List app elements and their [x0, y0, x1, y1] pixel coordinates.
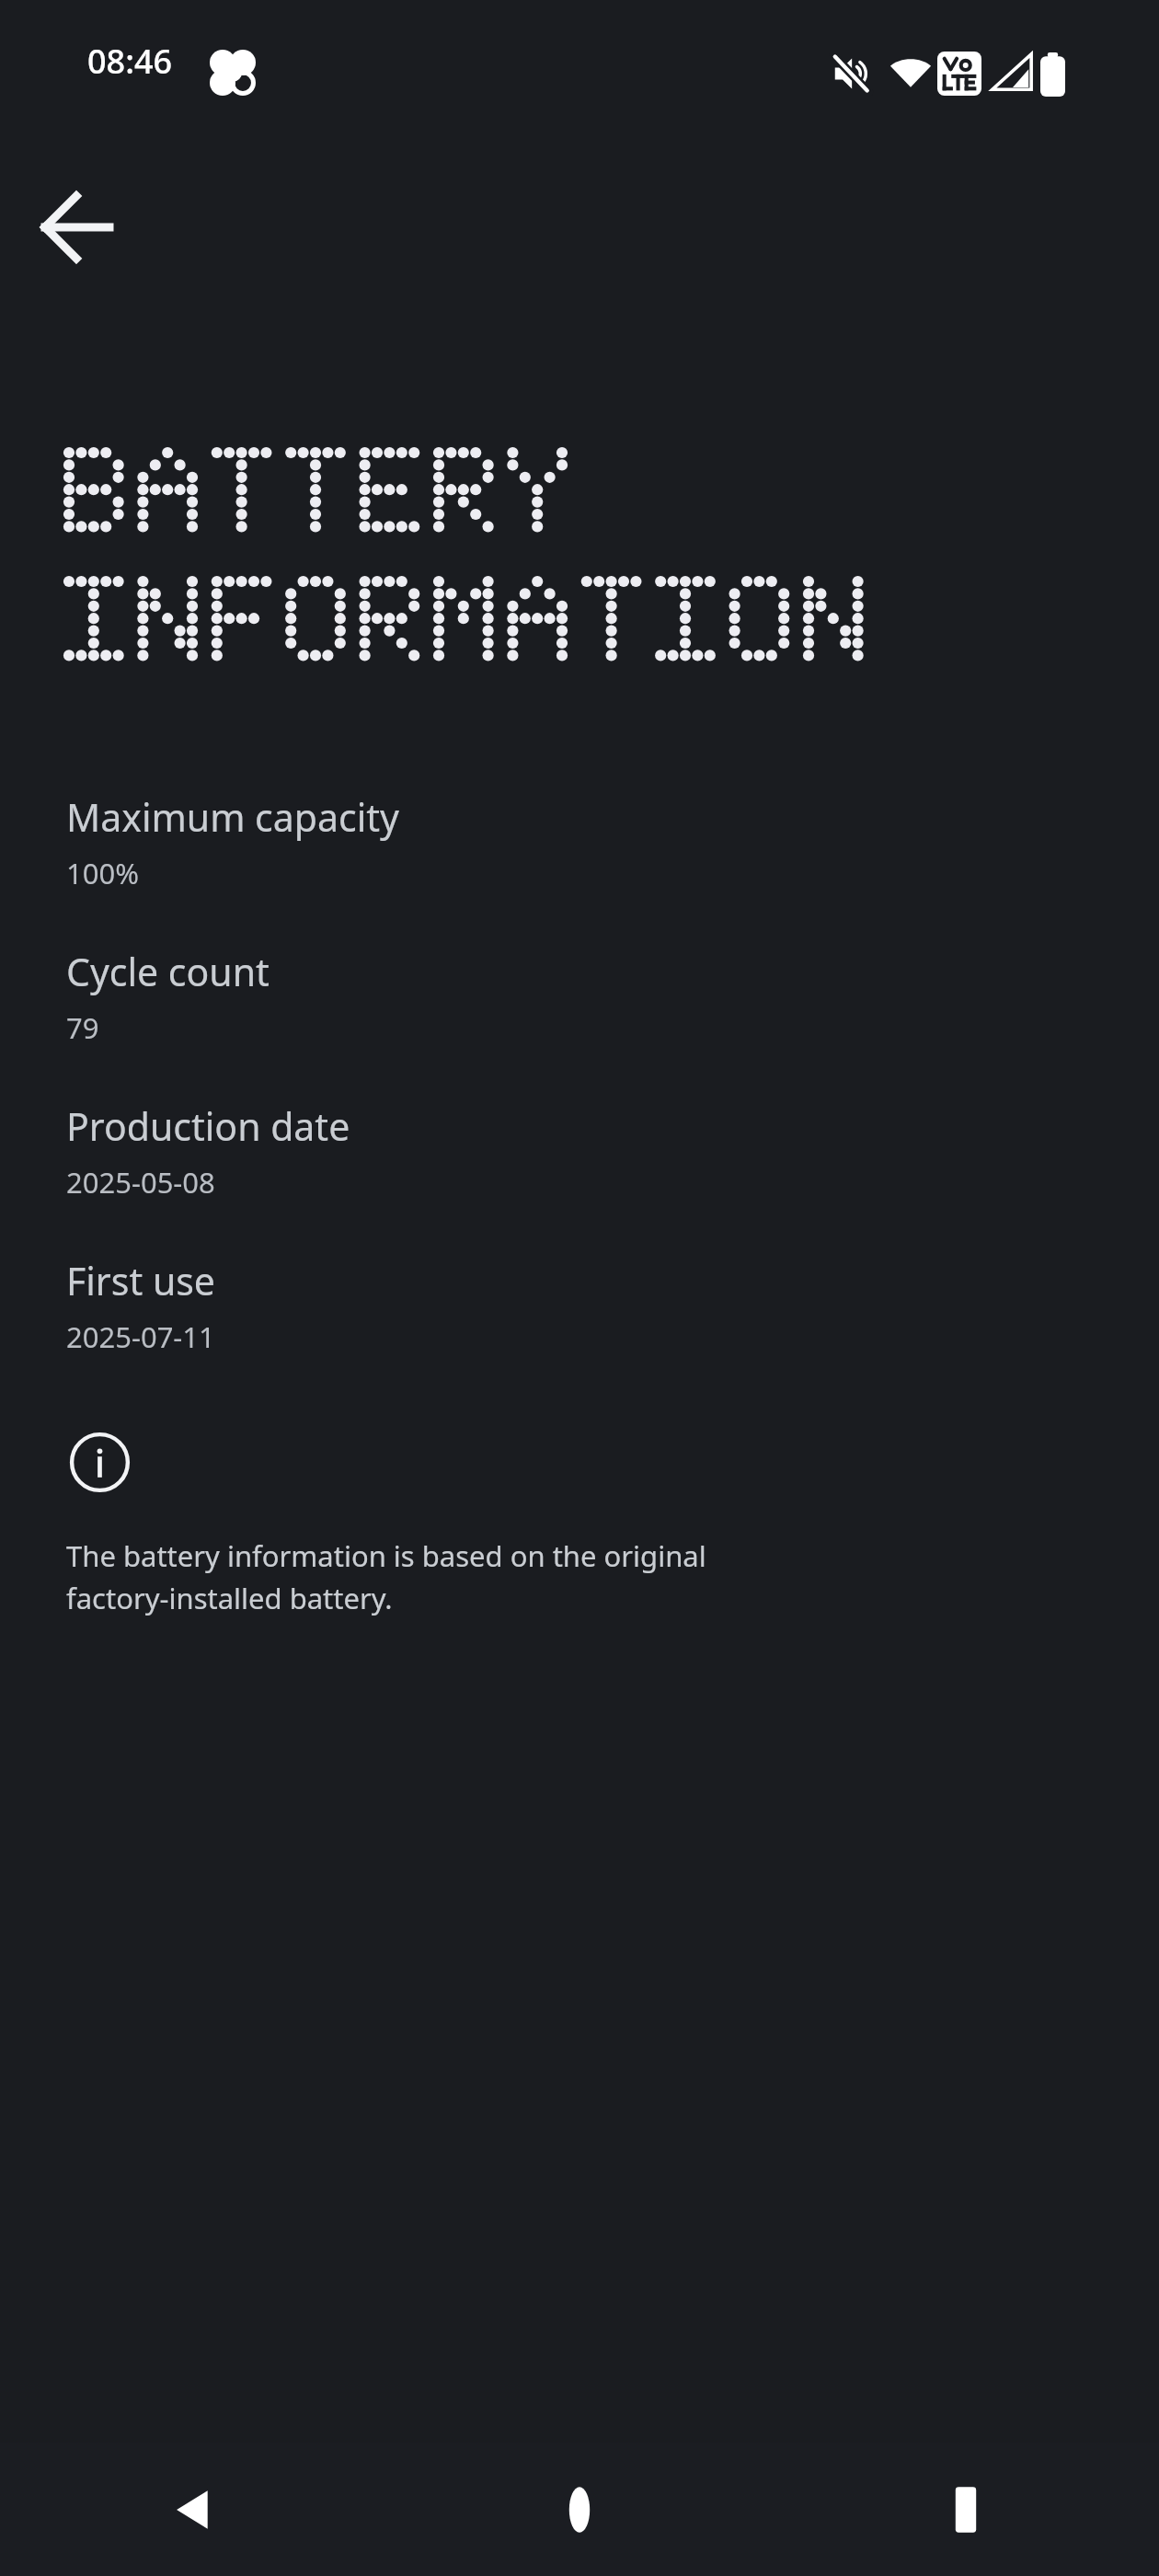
- staticText: Cycle count: [66, 946, 270, 997]
- staticText: 08:46: [87, 39, 173, 84]
- button[interactable]: Production date: [66, 1100, 1100, 1202]
- staticText: 100%: [66, 854, 139, 892]
- staticText: Production date: [66, 1100, 350, 1152]
- button[interactable]: Back: [0, 2443, 386, 2576]
- button[interactable]: Home: [386, 2443, 773, 2576]
- button[interactable]: First use: [66, 1255, 1100, 1356]
- staticText: 2025-05-08: [66, 1163, 215, 1202]
- staticText: The battery information is based on the …: [66, 1536, 706, 1617]
- staticText: First use: [66, 1255, 215, 1306]
- button[interactable]: Maximum capacity: [66, 791, 1100, 892]
- staticText: 2025-07-11: [66, 1317, 215, 1356]
- button[interactable]: Recent apps: [773, 2443, 1159, 2576]
- button[interactable]: Cycle count: [66, 946, 1100, 1047]
- button[interactable]: Back: [22, 172, 132, 282]
- staticText: 79: [66, 1008, 99, 1047]
- staticText: Maximum capacity: [66, 791, 399, 843]
